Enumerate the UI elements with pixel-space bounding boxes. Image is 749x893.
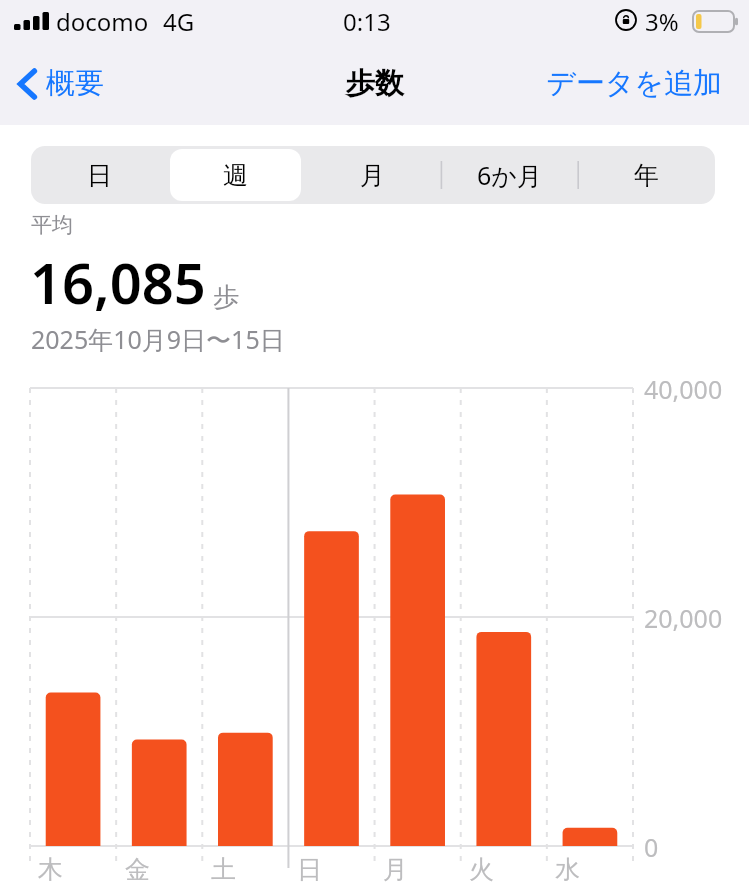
staticText: 平均	[31, 212, 73, 238]
staticText: 木	[38, 854, 63, 885]
other: Rotation lock	[615, 9, 637, 31]
staticText: 20,000	[644, 601, 723, 635]
staticText: 金	[125, 854, 150, 885]
staticText: 歩	[213, 281, 239, 314]
staticText: 16,085	[30, 244, 206, 320]
button[interactable]: 概要	[12, 59, 110, 108]
staticText: 年	[634, 160, 659, 191]
staticText: 月	[360, 160, 385, 191]
staticText: 概要	[46, 65, 104, 102]
button[interactable]: 6か月	[444, 149, 575, 201]
staticText: 0	[644, 830, 659, 864]
staticText: 4G	[163, 5, 195, 38]
staticText: 40,000	[644, 372, 723, 406]
staticText: 0:13	[343, 5, 391, 38]
button[interactable]: 日	[34, 149, 164, 201]
button[interactable]: 年	[581, 149, 712, 201]
staticText: docomo	[56, 5, 149, 38]
staticText: 土	[211, 854, 236, 885]
staticText: 3%	[645, 5, 679, 38]
staticText: 歩数	[346, 65, 404, 102]
staticText: 6か月	[477, 158, 542, 192]
button[interactable]: 月	[307, 149, 438, 201]
staticText: 日	[87, 160, 112, 191]
staticText: 2025年10月9日〜15日	[31, 322, 285, 356]
staticText: 水	[555, 854, 580, 885]
button[interactable]: 週	[170, 149, 301, 201]
staticText: データを追加	[546, 65, 723, 102]
button[interactable]: データを追加	[542, 61, 727, 106]
other: Battery 3 percent	[693, 11, 739, 32]
staticText: 火	[469, 854, 494, 885]
staticText: 日	[297, 854, 322, 885]
staticText: 月	[383, 854, 408, 885]
staticText: 週	[223, 160, 248, 191]
